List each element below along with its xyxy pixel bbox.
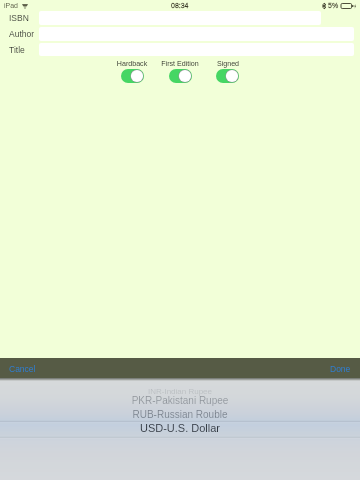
staticText: RUB-Russian Rouble [0, 409, 360, 420]
button[interactable]: USD-U.S. Dollar [0, 422, 360, 434]
button[interactable]: Signed [216, 69, 239, 83]
staticText: PKR-Pakistani Rupee [0, 395, 360, 406]
button[interactable]: INR-Indian Rupee [0, 387, 360, 396]
staticText: ISBN [9, 13, 29, 22]
button[interactable]: First Edition [169, 69, 192, 83]
staticText: Title [9, 45, 25, 54]
staticText: Author [9, 29, 35, 38]
staticText: iPad [4, 2, 19, 10]
staticText: Signed [188, 60, 268, 68]
staticText: Done [330, 364, 351, 373]
button[interactable]: Done [324, 360, 360, 377]
button[interactable]: Cancel [0, 360, 42, 377]
button[interactable]: RUB-Russian Rouble [0, 409, 360, 420]
staticText: 08:34 [171, 2, 189, 10]
staticText: USD-U.S. Dollar [0, 422, 360, 434]
staticText: Hardback [92, 60, 172, 68]
staticText: 5% [328, 2, 339, 10]
button[interactable]: Hardback [121, 69, 144, 83]
button[interactable]: PKR-Pakistani Rupee [0, 395, 360, 406]
staticText: First Edition [140, 60, 220, 68]
staticText: INR-Indian Rupee [0, 387, 360, 396]
staticText: Cancel [9, 364, 36, 373]
